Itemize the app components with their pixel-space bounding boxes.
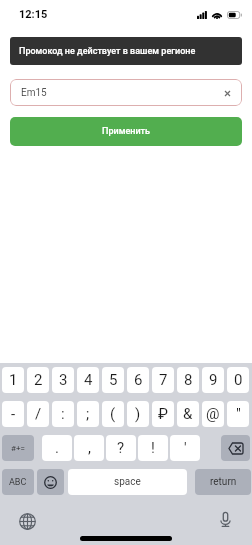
staticText: space [114,476,141,488]
button[interactable]: ABC [2,469,34,495]
staticText: 9 [209,371,218,389]
button[interactable]: / [27,401,49,427]
staticText: ! [151,439,155,457]
button[interactable]: @ [202,401,224,427]
button[interactable]: 5 [102,367,124,393]
button[interactable]: 6 [127,367,149,393]
button[interactable]: Emoji [37,469,64,495]
staticText: ) [135,405,141,423]
staticText: #+= [11,444,25,453]
staticText: 3 [59,371,68,389]
staticText: Применить [102,126,150,137]
staticText: 1 [9,371,18,389]
button[interactable]: space [68,469,187,495]
staticText: Em15 [21,87,47,99]
button[interactable]: 3 [52,367,74,393]
button[interactable]: ) [127,401,149,427]
staticText: & [183,405,193,423]
button[interactable]: 2 [27,367,49,393]
button[interactable]: Промокод не действует в вашем регионе [10,37,242,65]
staticText: / [35,405,42,423]
button[interactable]: & [177,401,199,427]
button[interactable]: ₽ [152,401,174,427]
button[interactable]: ' [170,435,200,461]
button[interactable]: - [2,401,24,427]
staticText: 7 [159,371,168,389]
staticText: ₽ [158,405,168,423]
button[interactable]: Применить [10,117,242,146]
button[interactable]: " [227,401,249,427]
staticText: 6 [134,371,143,389]
staticText: ; [86,405,90,423]
staticText: Промокод не действует в вашем регионе [19,46,196,57]
staticText: ' [184,439,187,457]
staticText: @ [206,405,220,423]
staticText: . [55,439,59,457]
staticText: return [210,476,237,488]
staticText: 2 [34,371,43,389]
button[interactable]: ? [106,435,136,461]
staticText: 0 [234,371,243,389]
staticText: ABC [9,477,27,488]
staticText: , [88,439,91,457]
button[interactable]: ! [138,435,168,461]
button[interactable]: , [74,435,104,461]
staticText: 5 [109,371,118,389]
staticText: ( [110,405,116,423]
button[interactable]: #+= [2,435,34,461]
button[interactable]: return [195,469,251,495]
button[interactable]: ; [77,401,99,427]
staticText: ? [117,439,125,457]
button[interactable]: 4 [77,367,99,393]
button[interactable]: ( [102,401,124,427]
staticText: - [11,405,16,423]
staticText: 4 [84,371,93,389]
button[interactable]: 0 [227,367,249,393]
button[interactable]: Backspace [221,435,250,461]
staticText: 12:15 [19,8,48,21]
button[interactable]: Change keyboard [19,513,36,530]
staticText: " [236,405,241,423]
button[interactable]: Clear [220,86,234,100]
staticText: 8 [184,371,193,389]
button[interactable]: : [52,401,74,427]
button[interactable]: 1 [2,367,24,393]
button[interactable]: 8 [177,367,199,393]
button[interactable]: Dictate [217,511,235,529]
button[interactable]: . [42,435,72,461]
button[interactable]: 7 [152,367,174,393]
button[interactable]: Em15 [10,79,242,106]
staticText: : [61,405,65,423]
button[interactable]: 9 [202,367,224,393]
